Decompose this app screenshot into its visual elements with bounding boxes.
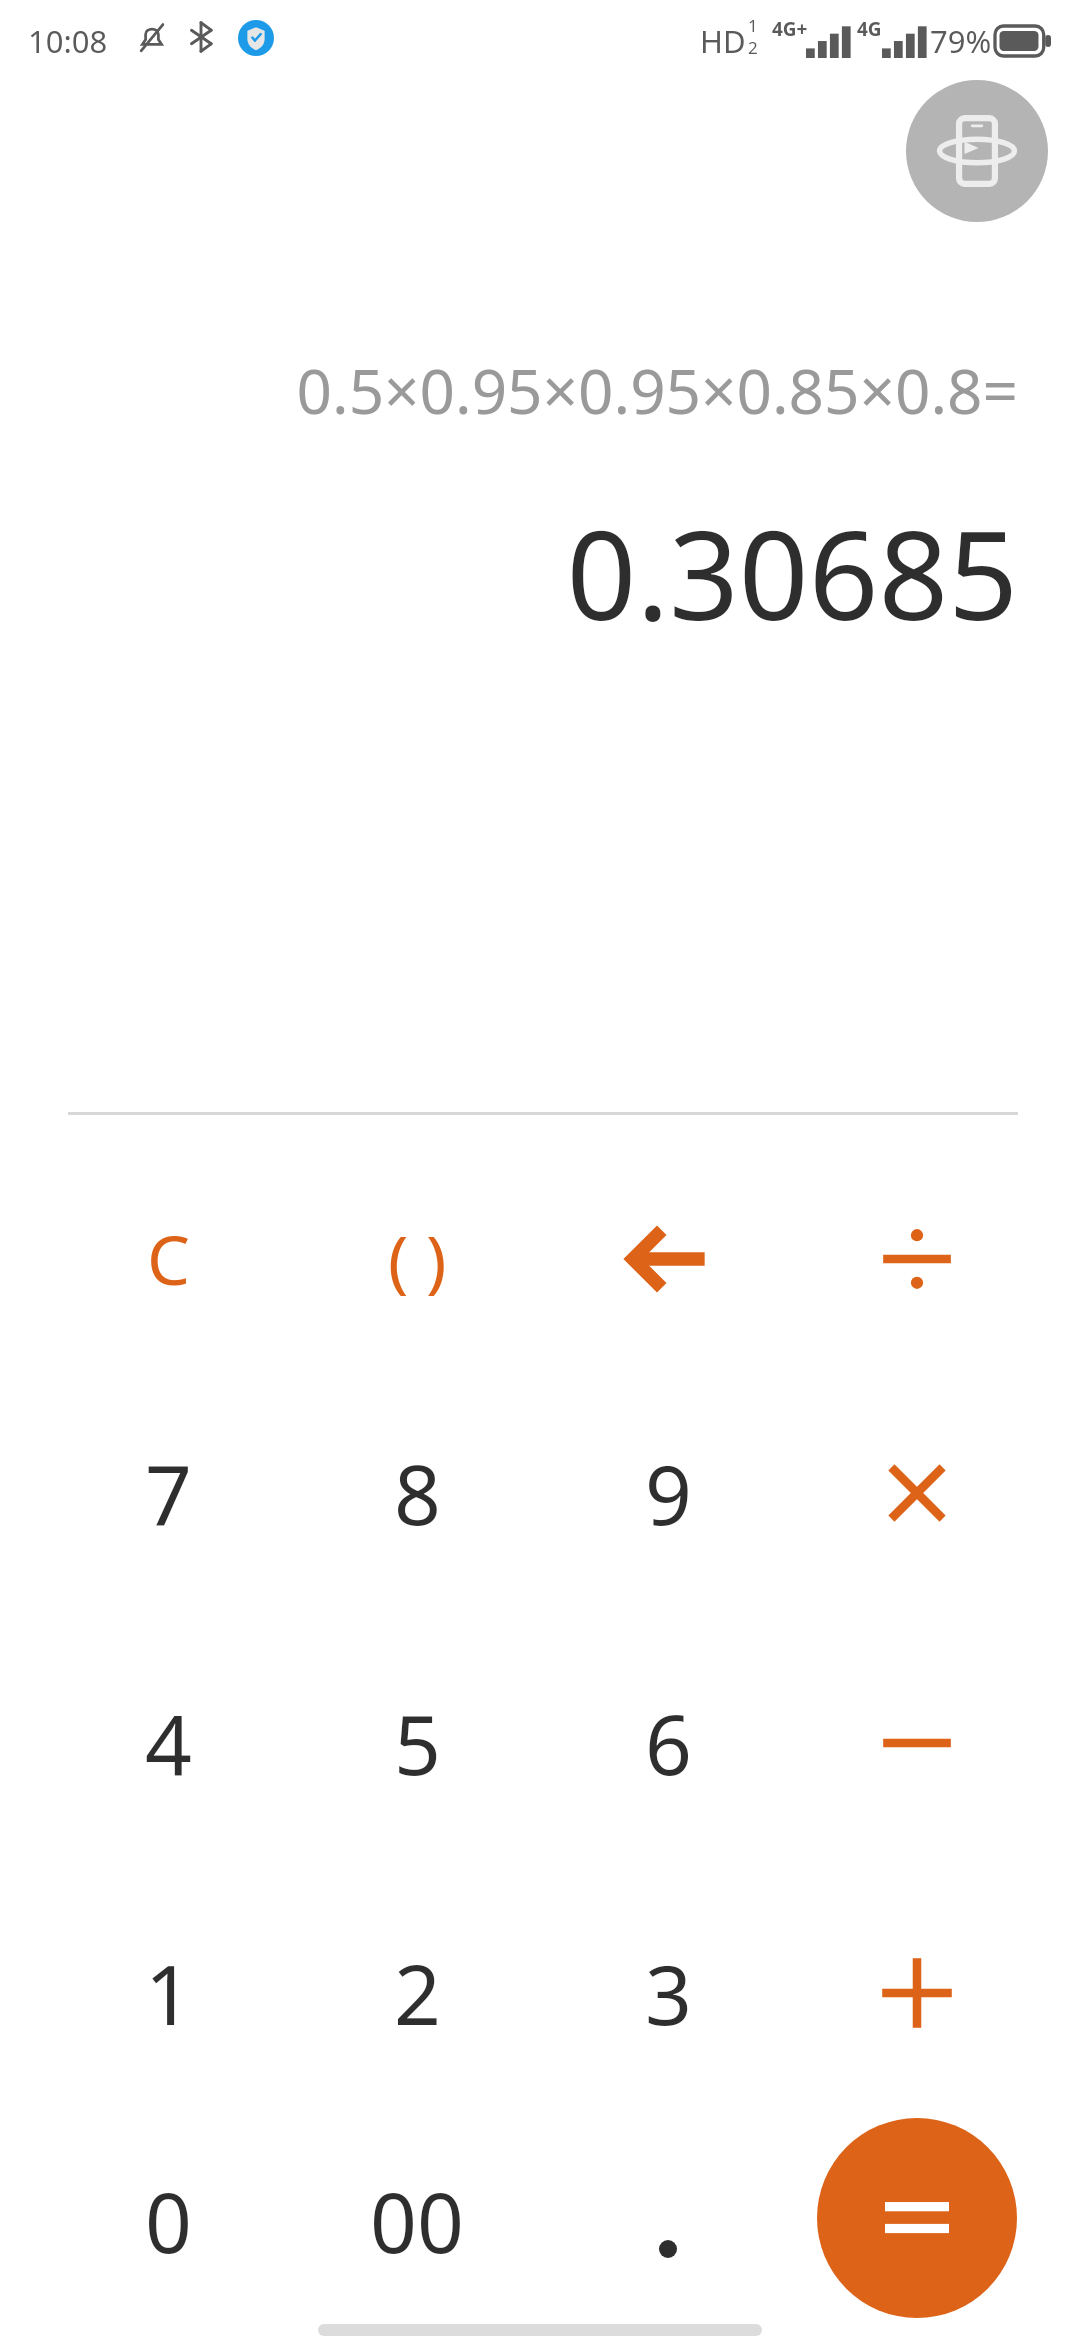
button[interactable]: 3: [548, 1880, 788, 2105]
staticText: 4G+: [772, 16, 808, 42]
staticText: 00: [370, 2165, 464, 2277]
button[interactable]: 00: [297, 2108, 537, 2333]
button[interactable]: Subtract: [797, 1630, 1037, 1855]
button[interactable]: Add: [797, 1880, 1037, 2105]
staticText: 1: [145, 1937, 192, 2049]
button[interactable]: 0: [48, 2108, 288, 2333]
staticText: 7: [145, 1437, 192, 1549]
button[interactable]: 1: [48, 1880, 288, 2105]
button[interactable]: 9: [548, 1380, 788, 1605]
staticText: 4G: [857, 16, 882, 42]
staticText: C: [147, 1212, 190, 1305]
staticText: 2: [748, 36, 758, 59]
button[interactable]: 4: [48, 1630, 288, 1855]
button[interactable]: 8: [297, 1380, 537, 1605]
button[interactable]: Clear: [48, 1146, 288, 1371]
button[interactable]: 5: [297, 1630, 537, 1855]
staticText: 0: [145, 2165, 192, 2277]
staticText: 5: [394, 1687, 441, 1799]
staticText: 6: [645, 1687, 692, 1799]
staticText: 1: [748, 14, 758, 37]
button[interactable]: Rotate screen: [906, 80, 1048, 222]
button[interactable]: 6: [548, 1630, 788, 1855]
staticText: 2: [394, 1937, 441, 2049]
staticText: 9: [645, 1437, 692, 1549]
button[interactable]: Decimal point: [548, 2108, 788, 2333]
button[interactable]: 7: [48, 1380, 288, 1605]
staticText: 3: [645, 1937, 692, 2049]
staticText: ( ): [388, 1212, 447, 1305]
button[interactable]: Backspace: [548, 1146, 788, 1371]
button[interactable]: Equals: [817, 2118, 1017, 2318]
staticText: 4: [145, 1687, 192, 1799]
button[interactable]: Divide: [797, 1146, 1037, 1371]
staticText: 10:08: [28, 20, 108, 62]
staticText: 0.5×0.95×0.95×0.85×0.8=: [0, 348, 1018, 432]
staticText: HD: [700, 20, 746, 62]
button[interactable]: Parentheses: [297, 1146, 537, 1371]
button[interactable]: Multiply: [797, 1380, 1037, 1605]
button[interactable]: 2: [297, 1880, 537, 2105]
staticText: 79%: [930, 20, 992, 62]
staticText: 8: [394, 1437, 441, 1549]
staticText: 0.30685: [0, 490, 1018, 656]
